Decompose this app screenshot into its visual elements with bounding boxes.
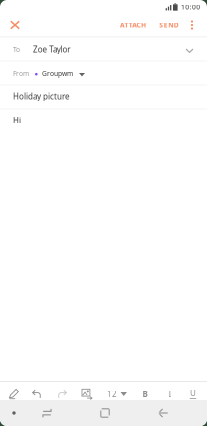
- staticText: Zoe Taylor: [33, 44, 70, 55]
- staticText: U: [190, 388, 196, 398]
- button[interactable]: Bold: [135, 384, 155, 404]
- button[interactable]: ATTACH: [116, 14, 150, 36]
- button[interactable]: To: [0, 37, 207, 60]
- staticText: Groupwm: [42, 69, 73, 78]
- staticText: ATTACH: [120, 21, 146, 29]
- button[interactable]: SEND: [155, 14, 183, 36]
- button[interactable]: Italic: [160, 384, 180, 404]
- button[interactable]: Holiday picture: [0, 85, 207, 108]
- button[interactable]: Hide keyboard: [1, 400, 27, 426]
- staticText: I: [168, 389, 171, 399]
- button[interactable]: Back: [150, 400, 176, 426]
- button[interactable]: Insert image: [76, 384, 98, 404]
- button[interactable]: More options: [183, 14, 201, 36]
- button[interactable]: Recent apps: [34, 400, 60, 426]
- staticText: 12: [107, 389, 117, 399]
- button[interactable]: Redo: [51, 384, 73, 404]
- button[interactable]: Undo: [26, 384, 48, 404]
- staticText: 10:00: [181, 2, 200, 11]
- staticText: B: [142, 389, 147, 399]
- button[interactable]: Font size 12: [102, 384, 132, 404]
- button[interactable]: Draw: [3, 384, 25, 404]
- staticText: Hi: [13, 115, 21, 126]
- button[interactable]: Close: [2, 14, 28, 36]
- staticText: From: [13, 69, 29, 78]
- button[interactable]: From: [0, 61, 207, 84]
- staticText: SEND: [159, 21, 179, 29]
- staticText: To: [13, 45, 20, 54]
- button[interactable]: Home: [92, 400, 118, 426]
- button[interactable]: Underline: [183, 384, 203, 404]
- staticText: Holiday picture: [13, 91, 70, 102]
